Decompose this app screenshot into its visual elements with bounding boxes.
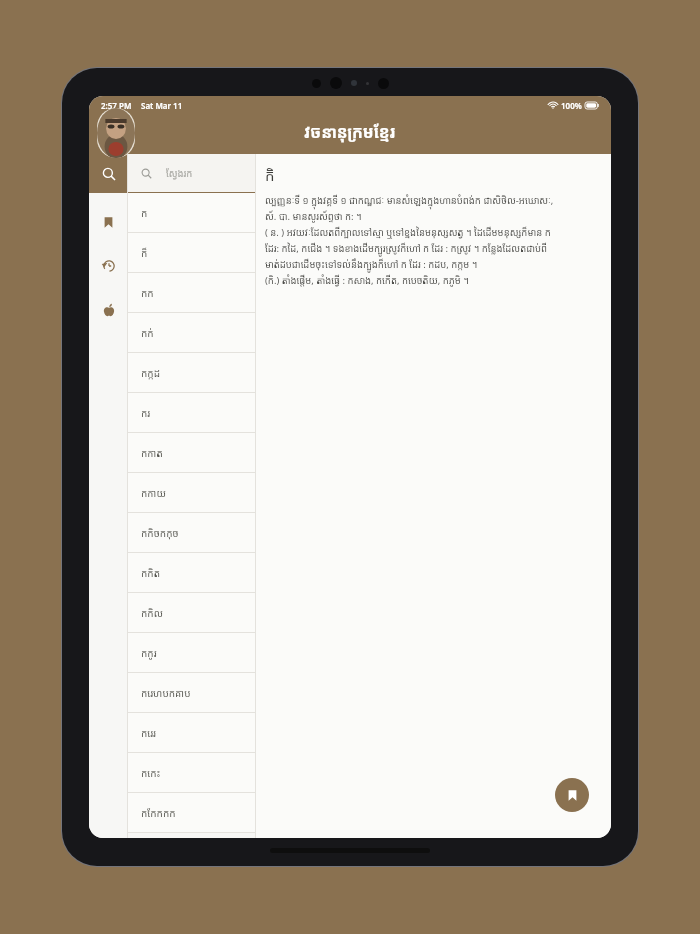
button[interactable]: កកិត [128, 553, 255, 593]
button[interactable]: Bookmark [555, 778, 589, 812]
staticText: កកាយ [141, 486, 167, 500]
staticText: (កិ.) តាំងផ្ដើម, តាំងធ្វើ : កសាង, កកេីត,… [265, 274, 469, 287]
staticText: ដែរ: កដៃ, កជើង ។ ទងខាងដើមក្បូរស្រូវក៏ហៅ … [265, 242, 548, 255]
button[interactable]: Search [89, 154, 128, 193]
button[interactable]: ករ [128, 393, 255, 433]
staticText: 100% [561, 100, 582, 111]
button[interactable]: កកាត [128, 433, 255, 473]
button[interactable]: កក [128, 273, 255, 313]
staticText: ករេរ [141, 726, 157, 740]
staticText: ក [141, 206, 148, 220]
button[interactable]: ករេរ [128, 713, 255, 753]
staticText: កក់ [141, 326, 154, 340]
button[interactable]: About [89, 297, 128, 323]
staticText: កក្កដ [141, 366, 161, 380]
staticText: 2:57 PM [101, 100, 132, 111]
staticText: ( ន. ) អវយវៈដែលតពីក្បាលទៅស្មា ឬទៅខ្នងនៃម… [265, 226, 551, 239]
staticText: Sat Mar 11 [141, 100, 183, 111]
staticText: ករ [141, 406, 151, 420]
staticText: កកែកកក [141, 806, 176, 820]
staticText: ករេហបកគាប [141, 686, 191, 700]
button[interactable]: History [89, 253, 128, 279]
staticText: ស័. បា. មានសូរស័ព្ទថា ក: ។ [265, 210, 362, 223]
staticText: កកាត [141, 446, 163, 460]
staticText: កកូរ [141, 646, 157, 660]
staticText: កកេះ [141, 766, 161, 780]
button[interactable]: កក់ [128, 313, 255, 353]
staticText: ក៏ [141, 246, 148, 260]
staticText: កកិចកកុច [141, 526, 179, 540]
staticText: មាត់ដបជាដើមចុះទៅទល់នឹងក្បូងក៏ហៅ ក ដែរ : … [265, 258, 478, 271]
staticText: កកិត [141, 566, 161, 580]
staticText: កិ [265, 165, 275, 185]
button[interactable]: ក [128, 193, 255, 233]
button[interactable]: Profile [97, 108, 135, 158]
button[interactable]: ករេហបកគាប [128, 673, 255, 713]
button[interactable]: កកេះ [128, 753, 255, 793]
button[interactable]: Bookmarks [89, 209, 128, 235]
staticText: ល្បញ្ញនៈទី ១ ក្នុងវគ្គទី ១ ជាកណ្ឋជៈ មានស… [265, 194, 554, 207]
button[interactable]: កកិចកកុច [128, 513, 255, 553]
button[interactable]: ក៏ [128, 233, 255, 273]
button[interactable]: កក្កដ [128, 353, 255, 393]
staticText: កកិល [141, 606, 163, 620]
staticText: កក [141, 286, 154, 300]
staticText: វចនានុក្រមខ្មែរ [304, 121, 396, 143]
button[interactable]: កកាយ [128, 473, 255, 513]
button[interactable]: កកូរ [128, 633, 255, 673]
button[interactable]: ស្វែងរក [128, 154, 255, 193]
button[interactable]: កកិល [128, 593, 255, 633]
button[interactable]: កកែកកក [128, 793, 255, 833]
staticText: ស្វែងរក [166, 167, 193, 180]
